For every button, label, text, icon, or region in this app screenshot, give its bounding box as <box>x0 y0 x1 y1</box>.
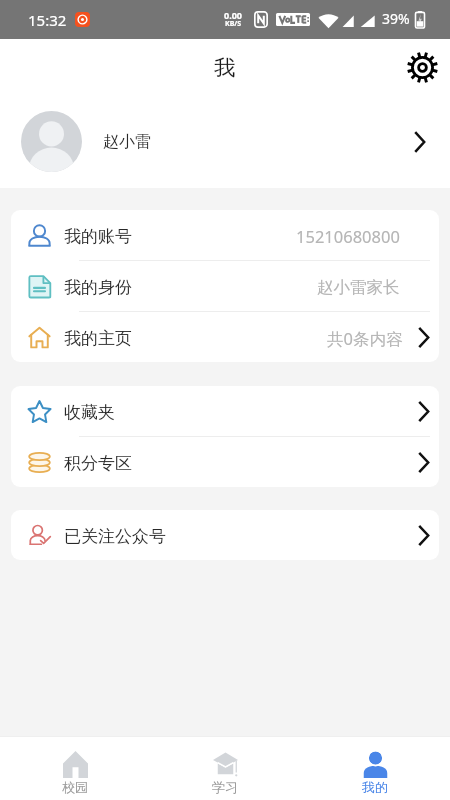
staticText: 15:32 <box>28 10 67 30</box>
button[interactable]: 收藏夹 <box>11 386 439 436</box>
staticText: 收藏夹 <box>64 402 115 423</box>
staticText: 0.00 <box>224 9 242 21</box>
button[interactable]: Settings <box>404 49 440 85</box>
staticText: 我的 <box>362 779 388 795</box>
staticText: 我 <box>214 54 236 81</box>
staticText: 15210680800 <box>296 225 400 247</box>
button[interactable]: 我的账号 <box>11 210 439 260</box>
button[interactable]: 我的 <box>300 737 450 800</box>
staticText: 我的账号 <box>64 226 132 247</box>
staticText: 共0条内容 <box>327 327 403 350</box>
button[interactable]: 赵小雷 <box>0 95 450 188</box>
staticText: 积分专区 <box>64 453 132 474</box>
staticText: KB/S <box>225 19 242 29</box>
staticText: 39% <box>382 9 410 28</box>
button[interactable]: 已关注公众号 <box>11 510 439 560</box>
staticText: 赵小雷家长 <box>317 277 400 298</box>
button[interactable]: 学习 <box>150 737 300 800</box>
button[interactable]: 我的身份 <box>11 261 439 311</box>
staticText: 已关注公众号 <box>64 526 166 547</box>
button[interactable]: 校园 <box>0 737 150 800</box>
staticText: 我的主页 <box>64 328 132 349</box>
staticText: 赵小雷 <box>103 132 151 152</box>
button[interactable]: 我的主页 <box>11 312 439 362</box>
staticText: 我的身份 <box>64 277 132 298</box>
staticText: 学习 <box>212 779 238 795</box>
button[interactable]: 积分专区 <box>11 437 439 487</box>
staticText: 校园 <box>62 779 88 795</box>
